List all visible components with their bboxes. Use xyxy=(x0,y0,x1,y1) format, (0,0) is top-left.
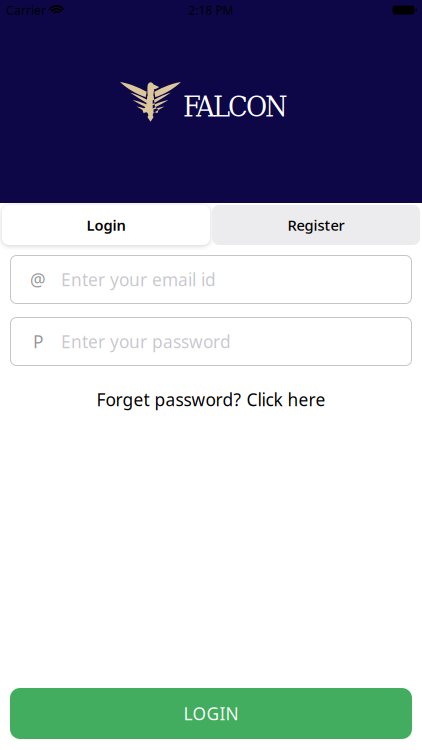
staticText: LOGIN xyxy=(183,702,238,725)
button[interactable]: Forget password? Click here xyxy=(96,366,325,411)
staticText: @ xyxy=(30,268,46,291)
staticText: Forget password? Click here xyxy=(96,388,325,411)
staticText: Carrier xyxy=(6,2,46,18)
staticText: Register xyxy=(287,215,344,235)
button[interactable]: P xyxy=(0,317,422,366)
staticText: Login xyxy=(86,215,125,235)
staticText: FALCON xyxy=(183,90,288,123)
staticText: Enter your password xyxy=(61,330,231,353)
staticText: 2:18 PM xyxy=(188,2,233,18)
button[interactable]: Login xyxy=(2,205,210,245)
button[interactable]: Register xyxy=(212,205,420,245)
button[interactable]: @ xyxy=(0,255,422,304)
button[interactable]: LOGIN xyxy=(0,688,422,739)
staticText: Enter your email id xyxy=(61,268,216,291)
staticText: P xyxy=(33,330,43,353)
